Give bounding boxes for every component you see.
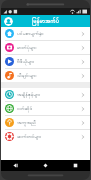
staticText: သီချင်းများ [17,72,80,79]
button[interactable]: သီချင်းများ [1,69,90,82]
staticText: မြန်မာအက်ပ် [32,17,59,25]
button[interactable]: ဝဘ်ဆိုဒ် [1,102,90,115]
button[interactable]: ပင်မစာမျက်နှာ [1,27,90,40]
button[interactable]: အချိန်ဇုန်များ [1,88,90,101]
staticText: ဝဘ်ဆိုဒ် [17,105,80,112]
staticText: ဓာတ်ပုံများ [17,44,80,51]
button[interactable]: Back [1,160,30,171]
button[interactable]: Home [30,160,60,171]
staticText: အချိန်ဇုန်များ [17,91,80,98]
staticText: ပင်မစာမျက်နှာ [17,30,80,37]
staticText: အကူအညီ [17,119,80,126]
button[interactable]: Recent apps [60,160,90,171]
button[interactable]: ဗီဒီယိုများ [1,55,90,68]
button[interactable]: ဓာတ်ပုံများ [1,41,90,54]
staticText: ဗီဒီယိုများ [17,58,80,65]
button[interactable]: Open navigation menu [4,17,13,26]
button[interactable]: ဆက်တင်များ [1,130,90,143]
button[interactable]: အကူအညီ [1,116,90,129]
staticText: ဆက်တင်များ [17,133,80,140]
